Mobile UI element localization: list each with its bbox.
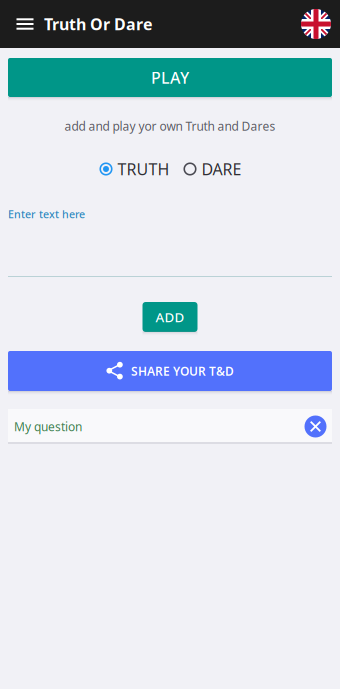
staticText: PLAY bbox=[151, 67, 189, 88]
staticText: ADD bbox=[155, 308, 184, 326]
staticText: DARE bbox=[201, 158, 241, 180]
button[interactable]: Language bbox=[296, 0, 340, 48]
button[interactable]: DARE bbox=[183, 159, 241, 179]
button[interactable]: ADD bbox=[142, 302, 197, 332]
button[interactable]: Delete question bbox=[299, 409, 332, 444]
button[interactable]: PLAY bbox=[8, 58, 332, 97]
staticText: SHARE YOUR T&D bbox=[131, 363, 234, 379]
staticText: TRUTH bbox=[117, 158, 169, 180]
staticText: My question bbox=[14, 418, 82, 434]
staticText: Enter text here bbox=[8, 207, 85, 221]
button[interactable]: TRUTH bbox=[95, 159, 169, 179]
staticText: Truth Or Dare bbox=[44, 13, 153, 35]
staticText: add and play yor own Truth and Dares bbox=[64, 118, 275, 134]
button[interactable]: Menu bbox=[0, 0, 44, 48]
button[interactable]: SHARE YOUR T&D bbox=[8, 351, 332, 391]
